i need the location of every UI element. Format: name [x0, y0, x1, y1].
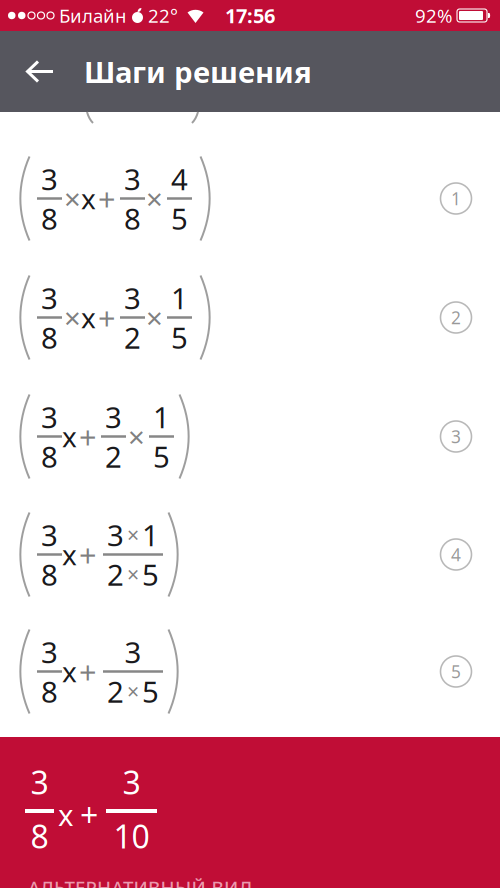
staticText: 3 — [41, 397, 58, 436]
staticText: 8 — [124, 199, 141, 238]
staticText: 5 — [142, 555, 159, 594]
staticText: 5 — [142, 672, 159, 711]
button[interactable]: 3 — [0, 258, 500, 377]
staticText: 3 — [41, 159, 58, 198]
staticText: 2 — [451, 306, 461, 329]
staticText: × — [146, 179, 163, 218]
staticText: 5 — [171, 318, 188, 357]
staticText: 3 — [451, 425, 461, 448]
staticText: 4 — [171, 159, 188, 198]
staticText: x — [62, 418, 77, 455]
staticText: 5 — [171, 199, 188, 238]
staticText: Билайн — [59, 3, 126, 28]
staticText: 5 — [153, 437, 170, 476]
staticText: 1 — [451, 187, 461, 210]
staticText: + — [98, 297, 116, 338]
staticText: 3 — [41, 632, 58, 671]
button[interactable]: 3 — [0, 496, 500, 613]
staticText: 10 — [113, 815, 149, 857]
staticText: 22° — [148, 3, 178, 28]
staticText: 92% — [415, 3, 453, 28]
staticText: + — [79, 534, 97, 575]
staticText: 3 — [124, 278, 141, 317]
staticText: 2 — [124, 318, 141, 357]
staticText: 1 — [142, 515, 159, 554]
staticText: x — [81, 299, 96, 336]
staticText: x — [81, 180, 96, 217]
staticText: 3 — [122, 761, 140, 803]
staticText: 8 — [41, 437, 58, 476]
staticText: 3 — [41, 515, 58, 554]
button[interactable]: 3 — [0, 139, 500, 258]
staticText: x — [62, 536, 77, 573]
button[interactable]: 3 — [0, 737, 500, 888]
staticText: 3 — [41, 278, 58, 317]
staticText: 2 — [107, 555, 124, 594]
staticText: 8 — [30, 815, 48, 857]
button[interactable]: 3 — [0, 613, 500, 730]
staticText: 8 — [41, 672, 58, 711]
staticText: 3 — [124, 159, 141, 198]
staticText: × — [127, 560, 139, 588]
staticText: × — [127, 521, 139, 549]
staticText: + — [80, 793, 98, 836]
staticText: 3 — [105, 397, 122, 436]
staticText: 8 — [41, 555, 58, 594]
staticText: × — [64, 298, 81, 337]
staticText: x — [62, 653, 77, 690]
staticText: 8 — [41, 199, 58, 238]
staticText: 1 — [171, 278, 188, 317]
staticText: × — [64, 179, 81, 218]
staticText: × — [146, 298, 163, 337]
staticText: 2 — [105, 437, 122, 476]
staticText: + — [98, 178, 116, 219]
staticText: 8 — [41, 318, 58, 357]
staticText: + — [79, 651, 97, 692]
staticText: × — [128, 417, 145, 456]
staticText: 5 — [451, 660, 461, 683]
staticText: 3 — [107, 515, 124, 554]
staticText: × — [127, 677, 139, 705]
staticText: АЛЬТЕРНАТИВНЫЙ ВИД — [28, 875, 252, 888]
staticText: + — [79, 416, 97, 457]
staticText: Шаги решения — [84, 52, 312, 91]
staticText: 17:56 — [225, 2, 275, 29]
staticText: 3 — [124, 632, 141, 671]
staticText: 3 — [30, 761, 48, 803]
staticText: 2 — [107, 672, 124, 711]
button[interactable]: 3 — [0, 377, 500, 496]
staticText: x — [58, 795, 74, 834]
staticText: 4 — [451, 543, 461, 566]
staticText: 1 — [153, 397, 170, 436]
button[interactable] — [0, 31, 69, 112]
